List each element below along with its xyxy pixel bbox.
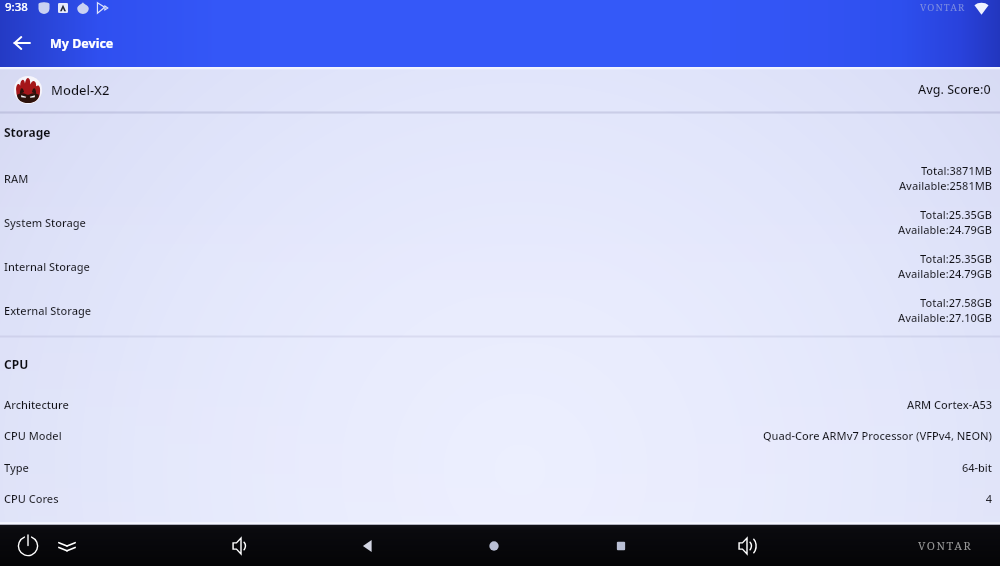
staticText: Avg. Score:0 — [918, 81, 991, 98]
staticText: 4 — [985, 491, 992, 506]
staticText: RAM — [4, 171, 29, 186]
staticText: Model-X2 — [51, 81, 110, 99]
staticText: Total:25.35GB — [920, 251, 992, 266]
staticText: Available:2581MB — [898, 178, 992, 193]
staticText: Available:24.79GB — [898, 266, 992, 281]
button[interactable]: Recents — [604, 529, 638, 563]
button[interactable]: CPU Cores — [0, 483, 1000, 513]
button[interactable]: Internal Storage — [0, 251, 1000, 281]
button[interactable]: Volume down — [224, 529, 258, 563]
staticText: Available:27.10GB — [898, 310, 992, 325]
button[interactable]: Type — [0, 452, 1000, 482]
staticText: Total:25.35GB — [920, 207, 992, 222]
staticText: Available:24.79GB — [898, 222, 992, 237]
button[interactable]: Back — [0, 21, 44, 65]
staticText: Storage — [4, 124, 51, 140]
button[interactable]: Power — [11, 529, 45, 563]
staticText: 9:38 — [5, 0, 28, 15]
staticText: Type — [4, 460, 29, 475]
button[interactable]: Home — [477, 529, 511, 563]
staticText: ARM Cortex-A53 — [906, 397, 992, 412]
staticText: CPU — [4, 356, 29, 372]
button[interactable]: Architecture — [0, 389, 1000, 419]
staticText: External Storage — [4, 303, 92, 318]
staticText: 1.51 GHz — [945, 521, 992, 536]
button[interactable]: Expand — [50, 529, 84, 563]
staticText: 64-bit — [961, 460, 992, 475]
staticText: CPU Model — [4, 428, 62, 443]
button[interactable]: System Storage — [0, 207, 1000, 237]
button[interactable]: External Storage — [0, 295, 1000, 325]
staticText: VONTAR — [918, 538, 973, 553]
button[interactable]: Volume up — [730, 529, 764, 563]
staticText: My Device — [50, 35, 114, 52]
button[interactable]: Back — [351, 529, 385, 563]
button[interactable]: CPU Model — [0, 420, 1000, 450]
staticText: Quad-Core ARMv7 Processor (VFPv4, NEON) — [762, 428, 992, 443]
staticText: VONTAR — [920, 1, 966, 14]
staticText: Total:3871MB — [920, 163, 992, 178]
button[interactable]: RAM — [0, 163, 1000, 193]
staticText: CPU Frequency — [4, 521, 84, 536]
staticText: Total:27.58GB — [920, 295, 992, 310]
button[interactable]: CPU Frequency — [0, 513, 1000, 543]
staticText: CPU Cores — [4, 491, 59, 506]
button[interactable]: Model-X2 — [0, 67, 1000, 112]
staticText: Internal Storage — [4, 259, 90, 274]
staticText: Architecture — [4, 397, 69, 412]
staticText: System Storage — [4, 215, 86, 230]
